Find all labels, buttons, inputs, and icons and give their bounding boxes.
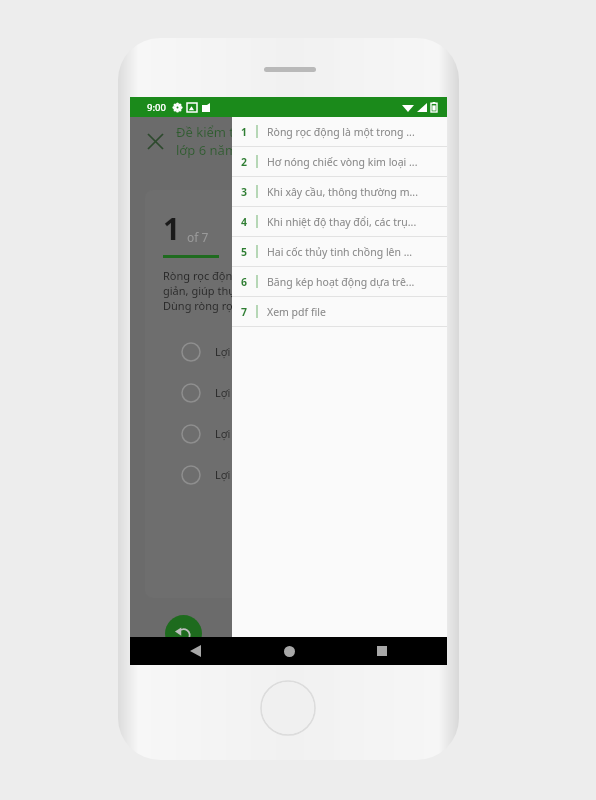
- staticText: Băng kép hoạt động dựa trê...: [267, 275, 415, 289]
- staticText: 7: [241, 305, 248, 319]
- staticText: 9:00: [147, 101, 166, 114]
- staticText: 1: [241, 125, 248, 139]
- staticText: of 7: [187, 229, 209, 245]
- staticText: Khi xây cầu, thông thường m...: [267, 185, 418, 199]
- staticText: Đề kiểm tra 1 tiết Vật Lí: [176, 123, 318, 141]
- button[interactable]: Close: [138, 124, 172, 158]
- staticText: Hơ nóng chiếc vòng kim loại ...: [267, 155, 418, 169]
- staticText: 2: [241, 155, 248, 169]
- button[interactable]: Lợi về lực: [163, 331, 395, 372]
- button[interactable]: Lợi về đường đi: [163, 372, 395, 413]
- button[interactable]: 5: [232, 237, 447, 266]
- staticText: Lợi về đường đi: [215, 385, 295, 400]
- staticText: Lợi về công: [215, 426, 274, 441]
- button[interactable]: Lợi về công: [163, 413, 395, 454]
- staticText: 5: [241, 245, 248, 259]
- button[interactable]: Back: [182, 638, 208, 664]
- staticText: 6: [241, 275, 248, 289]
- button[interactable]: Lợi cả về lực và đường đi: [163, 454, 395, 495]
- staticText: Khi nhiệt độ thay đổi, các trụ...: [267, 215, 417, 229]
- button[interactable]: Back: [165, 615, 202, 652]
- staticText: lớp 6 năm 2021: [176, 141, 271, 159]
- button[interactable]: 3: [232, 177, 447, 206]
- button[interactable]: 2: [232, 147, 447, 176]
- button[interactable]: 6: [232, 267, 447, 296]
- staticText: Lợi cả về lực và đường đi: [215, 467, 343, 482]
- button[interactable]: 1: [232, 117, 447, 146]
- button[interactable]: Recents: [369, 638, 395, 664]
- button[interactable]: Home: [276, 638, 302, 664]
- button[interactable]: 7: [232, 297, 447, 326]
- staticText: Lợi về lực: [215, 344, 264, 359]
- staticText: 1: [163, 208, 181, 249]
- staticText: Hai cốc thủy tinh chồng lên ...: [267, 245, 413, 259]
- staticText: 3: [241, 185, 248, 199]
- staticText: Xem pdf file: [267, 305, 326, 319]
- staticText: Ròng rọc động là một trong ...: [267, 125, 415, 139]
- staticText: Ròng rọc động là một trong các máy cơ đơ…: [163, 268, 389, 313]
- button[interactable]: 4: [232, 207, 447, 236]
- staticText: 4: [241, 215, 248, 229]
